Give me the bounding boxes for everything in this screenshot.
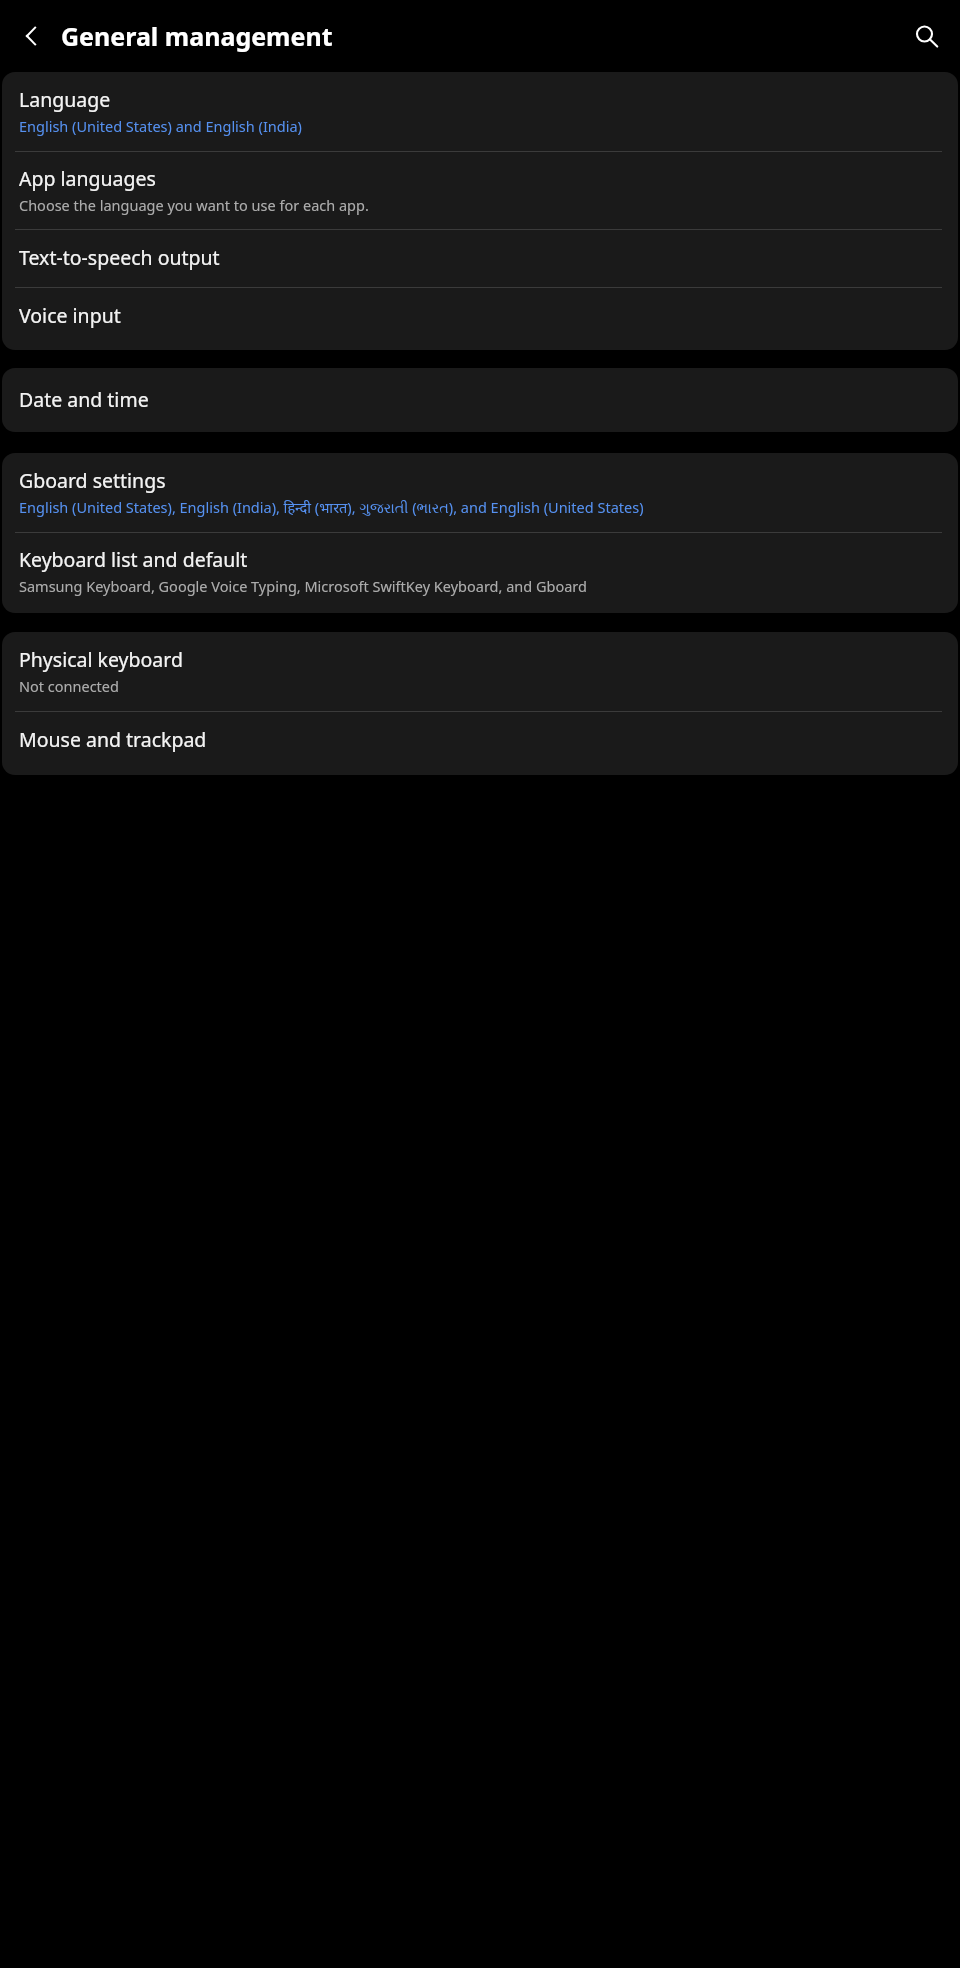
staticText: Date and time [19, 386, 149, 413]
staticText: Choose the language you want to use for … [19, 195, 369, 215]
button[interactable]: Search [903, 13, 949, 59]
button[interactable]: Mouse and trackpad [2, 712, 958, 775]
staticText: Samsung Keyboard, Google Voice Typing, M… [19, 576, 587, 596]
staticText: General management [61, 19, 333, 53]
button[interactable]: Back [10, 14, 54, 58]
button[interactable]: Date and time [2, 368, 958, 432]
staticText: Mouse and trackpad [19, 726, 207, 753]
button[interactable]: Voice input [2, 288, 958, 350]
staticText: Keyboard list and default [19, 546, 248, 573]
staticText: English (United States) and English (Ind… [19, 116, 302, 136]
button[interactable]: App languages [2, 152, 958, 229]
staticText: Gboard settings [19, 467, 166, 494]
staticText: App languages [19, 165, 156, 192]
button[interactable]: Text-to-speech output [2, 230, 958, 287]
button[interactable]: Physical keyboard [2, 632, 958, 711]
staticText: Language [19, 86, 111, 113]
button[interactable]: Language [2, 72, 958, 151]
staticText: English (United States), English (India)… [19, 497, 644, 517]
staticText: Not connected [19, 676, 119, 696]
staticText: Physical keyboard [19, 646, 183, 673]
staticText: Text-to-speech output [19, 244, 220, 271]
button[interactable]: Keyboard list and default [2, 533, 958, 613]
staticText: Voice input [19, 302, 121, 329]
button[interactable]: Gboard settings [2, 453, 958, 532]
